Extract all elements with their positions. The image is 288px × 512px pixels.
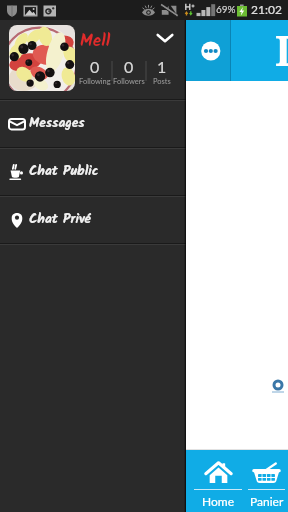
button[interactable]: 0 [78,57,112,93]
staticText: Chat Privé [29,209,91,231]
staticText: Mell [80,28,111,55]
staticText: 0 [124,57,134,76]
staticText: Followers [113,77,145,86]
staticText: 1 [157,57,167,76]
button[interactable]: Profile photo [9,25,75,91]
button[interactable]: Expand account [152,24,178,50]
staticText: D [275,22,288,78]
staticText: Home [202,494,234,508]
button[interactable]: Messages [0,101,186,147]
button[interactable]: 1 [148,57,176,93]
staticText: Posts [153,77,171,86]
button[interactable]: Home [191,450,245,512]
staticText: Panier [250,494,284,508]
button[interactable]: Chat Public [0,149,186,195]
button[interactable]: Panier [245,450,288,512]
button[interactable]: Menu [0,20,230,81]
staticText: 21:02 [251,2,282,16]
staticText: Messages [29,113,85,135]
staticText: Following [79,77,111,86]
button[interactable]: 0 [112,57,146,93]
staticText: Chat Public [29,161,99,183]
staticText: 0 [90,57,100,76]
staticText: 69% [216,3,236,15]
button[interactable]: Chat Privé [0,197,186,243]
